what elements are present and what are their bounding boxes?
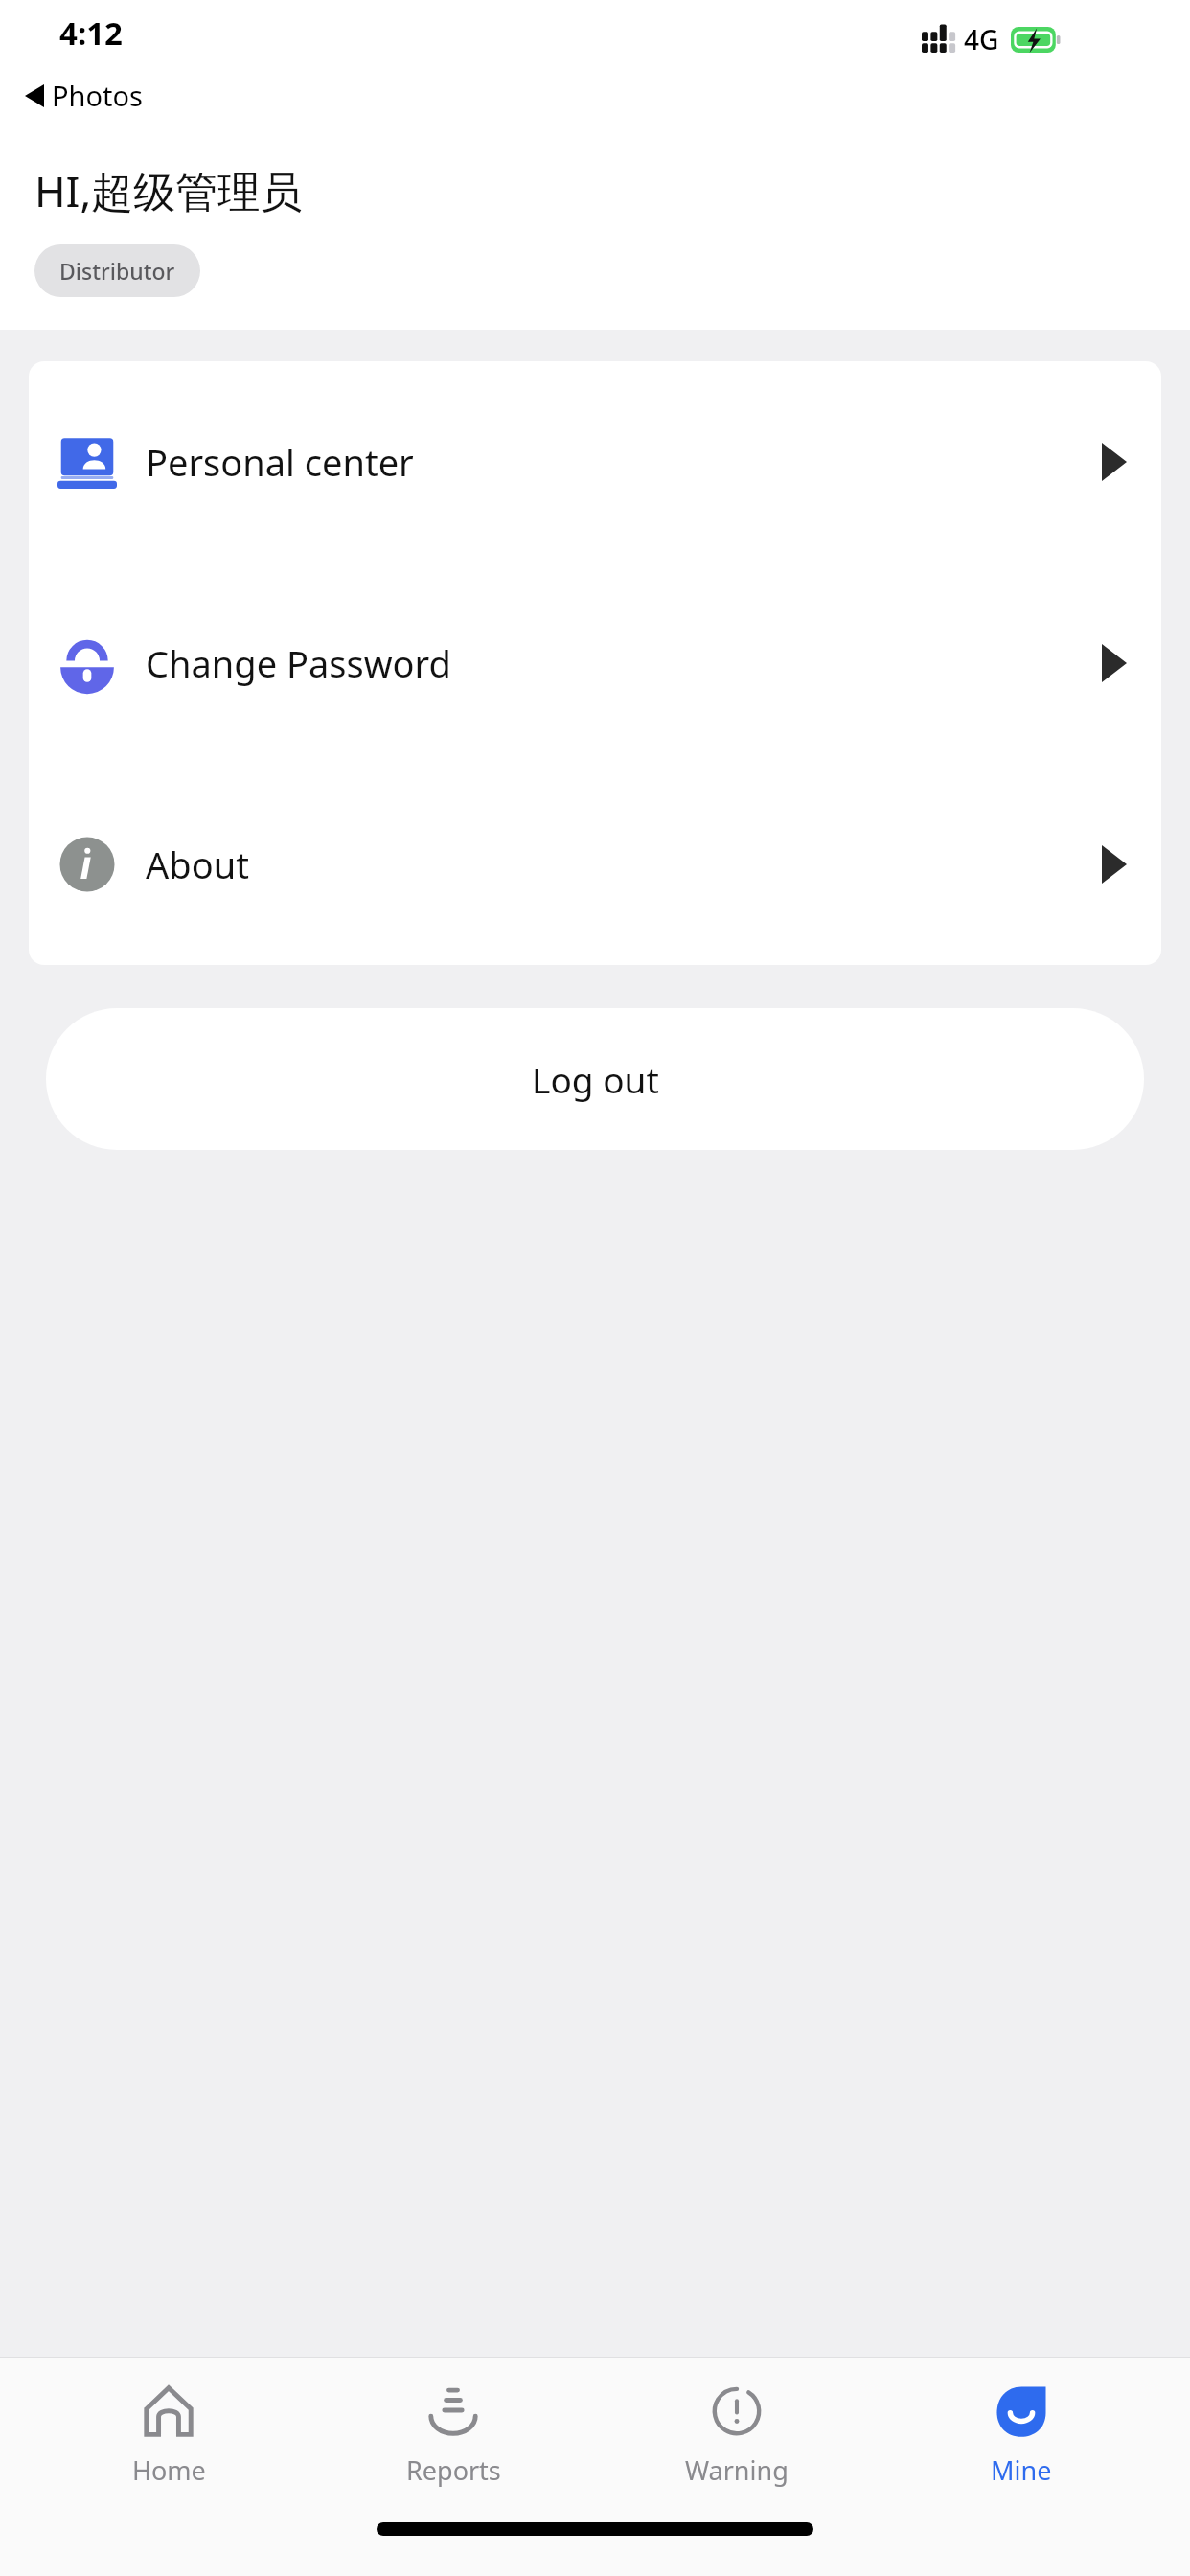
staticText: Distributor	[59, 256, 175, 286]
staticText: Warning	[685, 2452, 789, 2488]
button[interactable]: Personal center	[29, 361, 1161, 563]
button[interactable]: Distributor	[34, 244, 200, 297]
staticText: 4:12	[59, 11, 123, 55]
button[interactable]: Reports	[338, 2357, 568, 2511]
button[interactable]: Log out	[46, 1008, 1144, 1150]
staticText: HI,超级管理员	[34, 162, 303, 219]
staticText: 4G	[964, 21, 999, 57]
button[interactable]: Home	[54, 2357, 284, 2511]
staticText: About	[146, 839, 249, 889]
button[interactable]: Warning	[622, 2357, 852, 2511]
staticText: Photos	[52, 77, 143, 114]
staticText: Home	[132, 2452, 206, 2488]
staticText: Change Password	[146, 638, 451, 688]
button[interactable]: Mine	[906, 2357, 1136, 2511]
staticText: Personal center	[146, 437, 414, 487]
button[interactable]: Photos	[19, 73, 149, 118]
staticText: Reports	[406, 2452, 501, 2488]
button[interactable]: Change Password	[29, 563, 1161, 764]
staticText: Log out	[532, 1055, 659, 1103]
button[interactable]: About	[29, 764, 1161, 965]
staticText: Mine	[991, 2452, 1052, 2488]
